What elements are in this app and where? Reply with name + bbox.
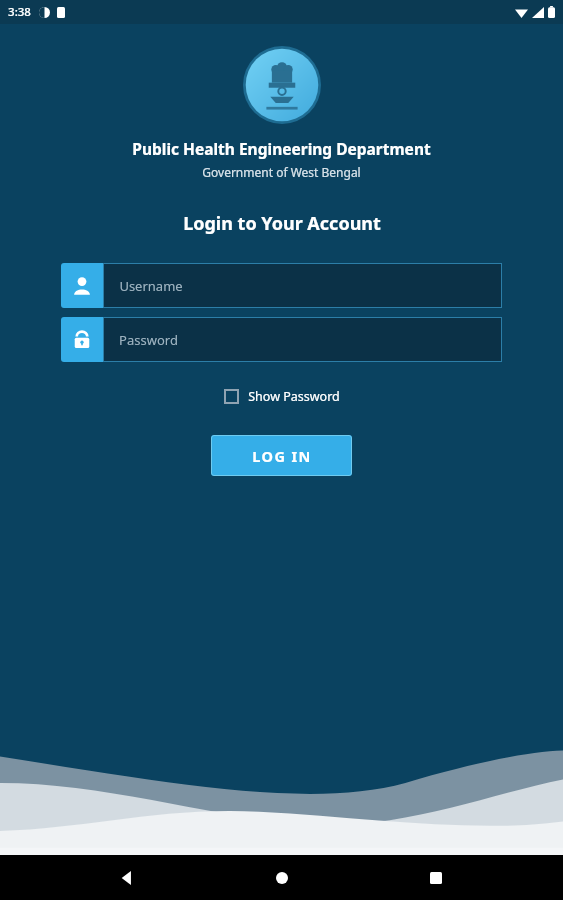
staticText: Government of West Bengal [202,164,361,180]
staticText: Show Password [248,388,340,405]
button[interactable]: Home [254,855,310,900]
button[interactable]: Username [61,263,502,308]
staticText: Login to Your Account [183,211,381,236]
other: Username [61,263,103,308]
staticText: Public Health Engineering Department [132,138,431,159]
button[interactable]: Show Password [218,384,346,409]
button[interactable]: Recent apps [408,855,464,900]
other: Password [61,317,103,362]
button[interactable]: Back [99,855,155,900]
staticText: 3:38 [8,4,31,20]
staticText: Password [119,331,178,349]
button[interactable]: LOG IN [211,435,352,476]
button[interactable]: Password [61,317,502,362]
staticText: LOG IN [252,446,312,466]
staticText: Username [119,277,183,295]
